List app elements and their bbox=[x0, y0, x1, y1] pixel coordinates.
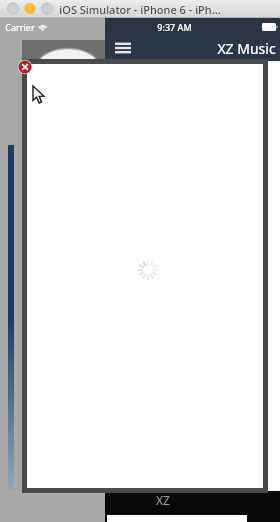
staticText: 9:37 AM bbox=[157, 21, 192, 33]
staticText: Carrier bbox=[5, 21, 35, 33]
button[interactable]: XZ Music bbox=[217, 39, 276, 58]
button[interactable]: Close bbox=[18, 60, 32, 74]
staticText: iOS Simulator - iPhone 6 - iPh... bbox=[59, 2, 221, 17]
button[interactable]: Menu bbox=[113, 38, 133, 58]
staticText: XZ bbox=[156, 492, 170, 508]
